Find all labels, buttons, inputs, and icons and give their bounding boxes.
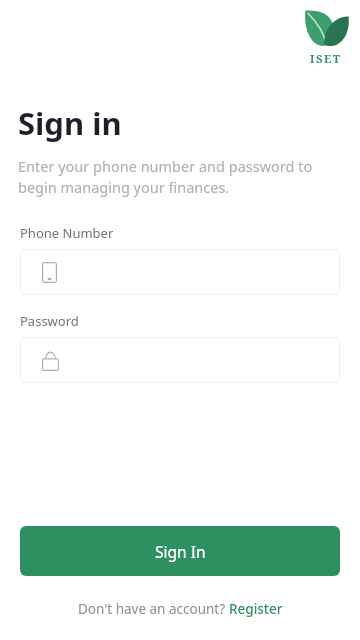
button[interactable]: Phone Number input [20,249,340,295]
staticText: Enter your phone number and password to … [18,156,338,198]
staticText: Password [20,312,79,330]
staticText: Don't have an account? [78,600,229,618]
button[interactable]: Password input [20,337,340,383]
staticText: Sign in [18,102,122,144]
staticText: Phone Number [20,224,114,242]
staticText: Register [229,600,283,618]
button[interactable]: Sign In [20,526,340,576]
staticText: ISET [310,51,342,66]
staticText: Sign In [155,541,206,562]
button[interactable]: Register [229,600,283,618]
